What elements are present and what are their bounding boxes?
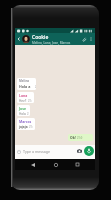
staticText: Melina (19, 79, 30, 83)
staticText: Hey!! (19, 99, 27, 102)
button[interactable]: More options (88, 36, 94, 42)
button[interactable]: Melina (17, 78, 36, 90)
staticText: 21:0 (29, 125, 34, 129)
button[interactable]: Back (28, 160, 37, 169)
staticText: Lana (19, 93, 28, 98)
button[interactable]: Recent apps (73, 160, 82, 169)
button[interactable]: Back (16, 36, 22, 42)
staticText: 21:0 (28, 99, 33, 102)
button[interactable]: Group photo (22, 35, 30, 43)
staticText: Jose (19, 106, 26, 111)
staticText: Type a message (23, 149, 50, 154)
button[interactable]: Type a message (17, 149, 75, 154)
staticText: Marcos (19, 119, 32, 124)
button[interactable]: Jose (17, 105, 30, 116)
button[interactable]: Lana (17, 92, 34, 103)
staticText: Ok! (70, 135, 76, 140)
staticText: 21:0 (77, 136, 83, 140)
staticText: Hola (19, 112, 26, 115)
button[interactable]: Attach file (80, 35, 88, 43)
staticText: jajaja (19, 125, 28, 129)
button[interactable]: Record voice message (84, 146, 94, 156)
button[interactable]: Camera (75, 146, 84, 156)
staticText: Cookie (32, 34, 49, 41)
staticText: Melina, Lana, Jose, Marcos (32, 41, 71, 45)
staticText: Hola a todos (19, 84, 35, 89)
button[interactable]: Ok! (68, 134, 93, 141)
button[interactable]: Home (51, 160, 60, 169)
staticText: 21:0 (27, 112, 29, 115)
button[interactable]: Marcos (17, 118, 35, 130)
